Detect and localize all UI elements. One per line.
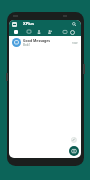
button[interactable]	[70, 30, 75, 35]
button[interactable]	[14, 30, 18, 34]
button[interactable]	[69, 146, 79, 156]
staticText: Good Messages	[23, 38, 51, 43]
button[interactable]	[71, 137, 77, 143]
staticText: now	[72, 41, 78, 45]
button[interactable]	[63, 30, 67, 34]
staticText: XPlus	[23, 21, 34, 26]
button[interactable]	[12, 22, 17, 27]
button[interactable]	[72, 22, 77, 27]
staticText: Bob1	[23, 43, 31, 47]
button[interactable]: Good Messages	[9, 36, 81, 49]
button[interactable]	[37, 30, 41, 34]
button[interactable]	[48, 30, 52, 34]
button[interactable]	[27, 30, 31, 34]
